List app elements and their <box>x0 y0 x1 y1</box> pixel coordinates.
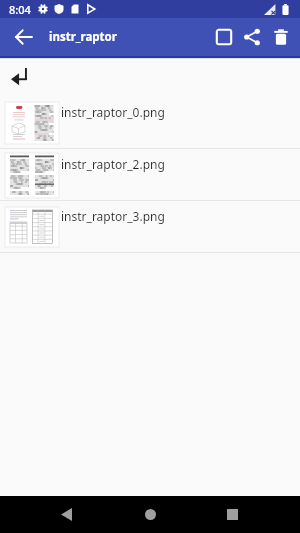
button[interactable] <box>0 18 48 56</box>
staticText: instr_raptor <box>49 29 117 45</box>
staticText: instr_raptor_0.png <box>61 104 165 120</box>
button[interactable] <box>130 496 170 533</box>
button[interactable]: instr_raptor_2.png <box>0 149 300 201</box>
button[interactable] <box>238 18 266 56</box>
button[interactable]: instr_raptor_0.png <box>0 97 300 149</box>
button[interactable] <box>0 59 300 97</box>
staticText: 8:04 <box>9 2 31 17</box>
button[interactable] <box>266 18 296 56</box>
staticText: instr_raptor_2.png <box>61 156 165 172</box>
button[interactable] <box>46 496 86 533</box>
button[interactable] <box>212 496 252 533</box>
button[interactable]: instr_raptor_3.png <box>0 201 300 253</box>
staticText: instr_raptor_3.png <box>61 208 165 224</box>
button[interactable] <box>210 18 238 56</box>
